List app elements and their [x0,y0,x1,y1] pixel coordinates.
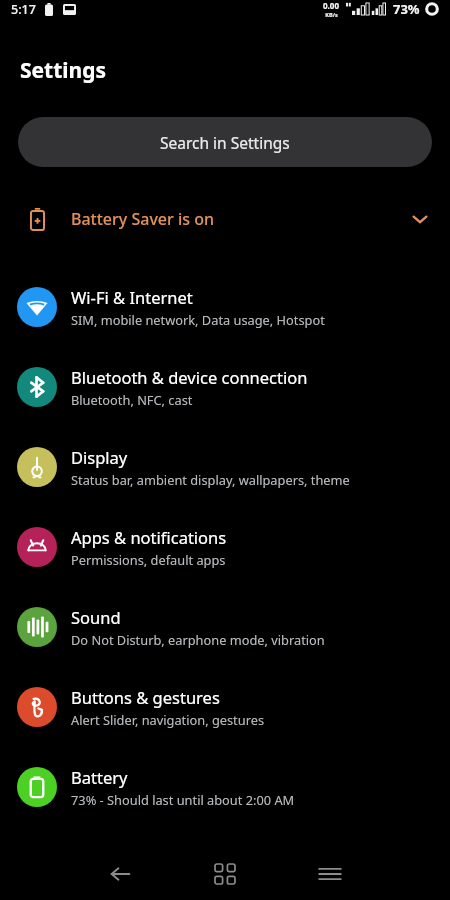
staticText: Battery [71,766,128,788]
staticText: 73% [393,0,420,18]
button[interactable]: Search in Settings [18,117,432,167]
staticText: Permissions, default apps [71,551,226,568]
staticText: 5:17 [11,1,36,18]
staticText: KB/s [325,11,338,18]
button[interactable]: Battery [0,747,450,827]
staticText: Status bar, ambient display, wallpapers,… [71,471,350,488]
staticText: Bluetooth & device connection [71,366,308,388]
staticText: Wi-Fi & Internet [71,286,193,308]
staticText: Display [71,446,128,468]
staticText: Sound [71,606,121,628]
staticText: Apps & notifications [71,526,227,548]
staticText: Alert Slider, navigation, gestures [71,711,265,728]
button[interactable]: Back [60,848,180,900]
button[interactable]: Apps & notifications [0,507,450,587]
button[interactable]: Wi-Fi & Internet [0,267,450,347]
button[interactable]: Bluetooth & device connection [0,347,450,427]
staticText: 73% - Should last until about 2:00 AM [71,791,295,808]
button[interactable]: Menu [270,848,390,900]
staticText: SIM, mobile network, Data usage, Hotspot [71,311,325,328]
staticText: Buttons & gestures [71,686,220,708]
button[interactable]: Buttons & gestures [0,667,450,747]
button[interactable]: Sound [0,587,450,667]
staticText: Battery Saver is on [71,208,214,230]
button[interactable]: Recent apps [180,848,270,900]
staticText: 0.00 [323,0,339,11]
staticText: Do Not Disturb, earphone mode, vibration [71,631,325,648]
button[interactable]: Battery Saver is on [0,197,450,241]
staticText: Settings [20,56,107,85]
staticText: Bluetooth, NFC, cast [71,391,193,408]
button[interactable]: Display [0,427,450,507]
staticText: Search in Settings [160,132,290,153]
